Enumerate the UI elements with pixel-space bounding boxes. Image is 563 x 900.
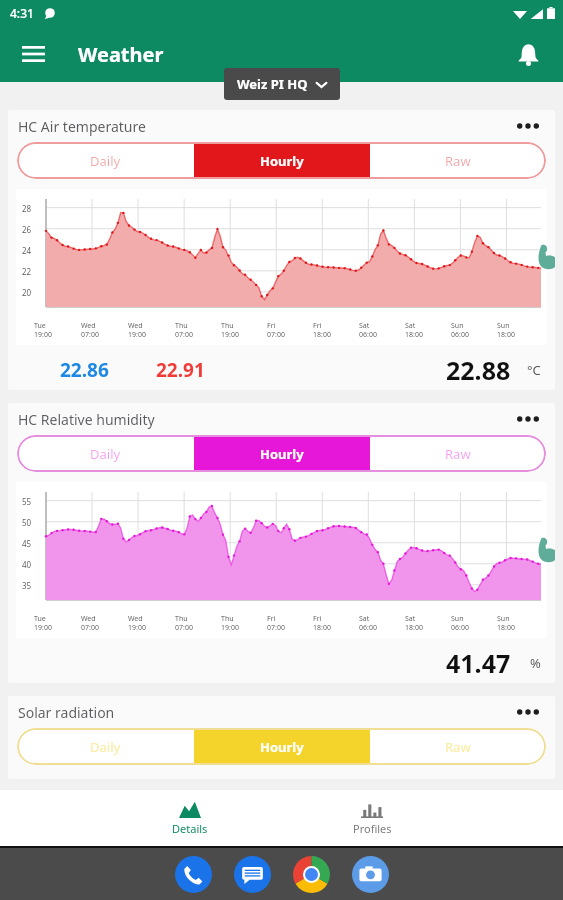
staticText: Hourly [260,152,304,170]
staticText: Thu 07:00 [175,614,193,632]
button[interactable]: Profiles [281,790,463,846]
staticText: Fri 07:00 [267,614,285,632]
staticText: Daily [90,738,121,756]
staticText: Wed 19:00 [128,321,146,339]
button[interactable]: Raw [370,435,546,472]
staticText: Fri 18:00 [313,614,331,632]
staticText: Wed 19:00 [128,614,146,632]
staticText: Sun 06:00 [451,614,469,632]
staticText: HC Air temperature [18,117,146,136]
staticText: Raw [445,445,471,463]
staticText: °C [527,361,541,379]
staticText: Thu 19:00 [221,321,239,339]
staticText: 35 [22,580,32,591]
staticText: Thu 19:00 [221,614,239,632]
button[interactable]: Open navigation menu [10,31,56,77]
staticText: Daily [90,445,121,463]
staticText: 24 [22,245,32,256]
staticText: Wed 07:00 [81,321,99,339]
staticText: Tue 19:00 [34,614,52,632]
staticText: Sun 06:00 [451,321,469,339]
staticText: Raw [445,152,471,170]
button[interactable]: Raw [370,728,546,765]
staticText: Sat 18:00 [405,321,423,339]
staticText: Weather [78,41,164,68]
staticText: Raw [445,738,471,756]
other: Messages [234,856,271,893]
staticText: Solar radiation [18,703,115,722]
staticText: 28 [22,203,32,214]
button[interactable]: Notifications [505,31,551,77]
button[interactable]: Daily [17,142,194,179]
button[interactable]: Hourly [194,142,370,179]
staticText: Wed 07:00 [81,614,99,632]
other: Pan chart [533,243,555,271]
staticText: Tue 19:00 [34,321,52,339]
staticText: Sun 18:00 [497,321,515,339]
staticText: 26 [22,224,32,235]
button[interactable]: Weiz PI HQ [224,68,340,100]
other: Camera [352,856,389,893]
staticText: 22.86 [60,357,109,383]
staticText: Daily [90,152,121,170]
staticText: 22.88 [446,353,511,387]
button[interactable]: Details [99,790,281,846]
staticText: % [530,654,541,672]
staticText: Sat 06:00 [359,321,377,339]
staticText: Sat 18:00 [405,614,423,632]
staticText: 40 [22,559,32,570]
staticText: Thu 07:00 [175,321,193,339]
button[interactable]: More options [511,403,545,435]
other: Phone [175,856,212,893]
staticText: HC Relative humidity [18,410,155,429]
staticText: Weiz PI HQ [237,75,308,93]
staticText: Hourly [260,445,304,463]
staticText: Fri 07:00 [267,321,285,339]
staticText: Sun 18:00 [497,614,515,632]
staticText: Profiles [353,821,392,836]
staticText: Fri 18:00 [313,321,331,339]
staticText: 50 [22,517,32,528]
button[interactable]: More options [511,110,545,142]
staticText: Hourly [260,738,304,756]
staticText: 45 [22,538,32,549]
button[interactable]: Raw [370,142,546,179]
button[interactable]: Hourly [194,728,370,765]
staticText: 20 [22,287,32,298]
button[interactable]: More options [511,696,545,728]
staticText: 41.47 [446,646,511,680]
button[interactable]: Daily [17,728,194,765]
staticText: 22.91 [156,357,205,383]
staticText: Details [172,821,208,836]
other: Chrome [293,856,330,893]
other: Pan chart [533,536,555,564]
staticText: 55 [22,496,32,507]
staticText: 22 [22,266,32,277]
staticText: Sat 06:00 [359,614,377,632]
button[interactable]: Hourly [194,435,370,472]
staticText: 4:31 [10,5,34,21]
button[interactable]: Daily [17,435,194,472]
